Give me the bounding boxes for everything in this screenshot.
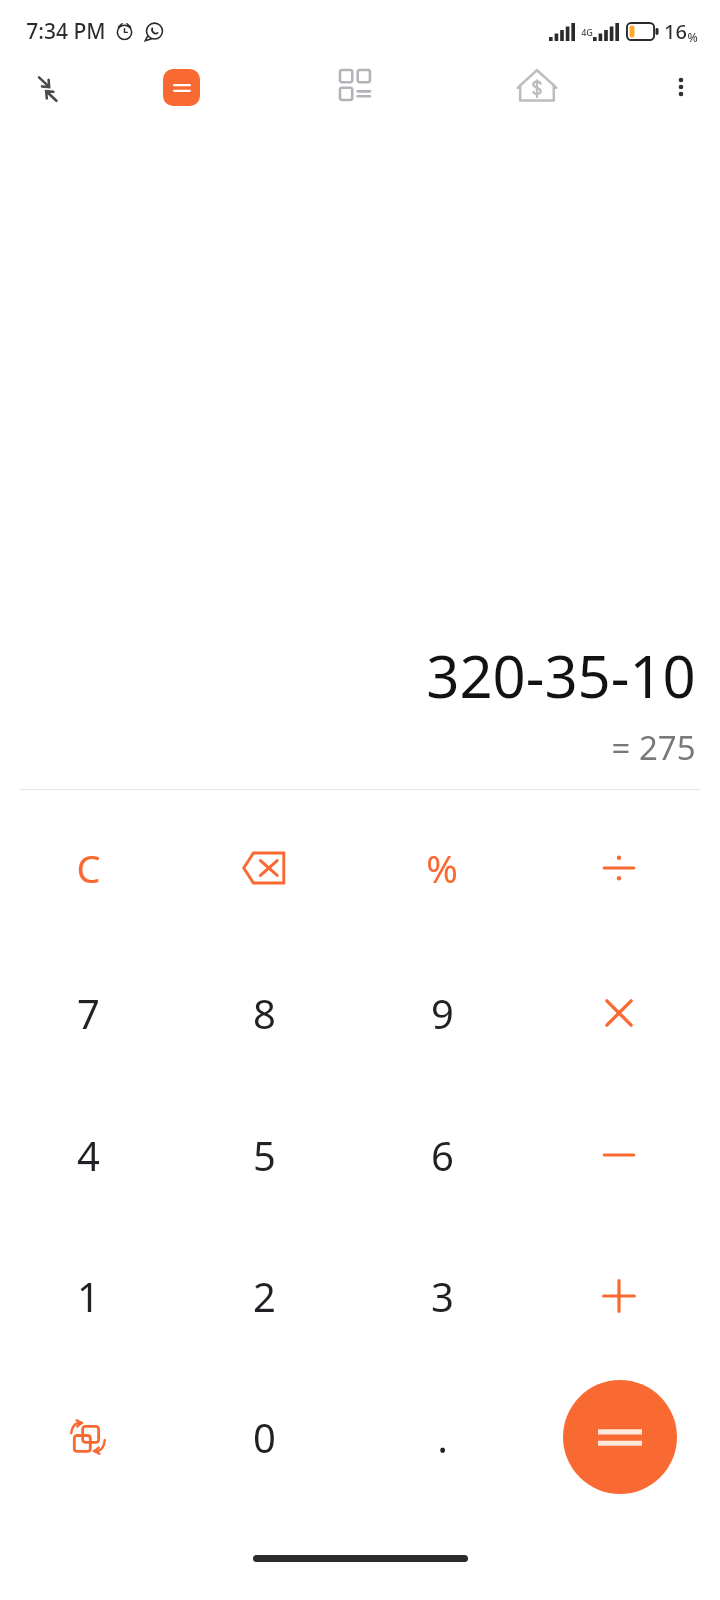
button[interactable]: Mortgage calculator <box>506 56 568 118</box>
button[interactable]: 7 <box>18 953 158 1073</box>
staticText: 9 <box>431 986 454 1040</box>
button[interactable]: 6 <box>372 1095 512 1215</box>
button[interactable]: Unit converter <box>326 56 388 118</box>
staticText: 7:34 PM <box>26 17 106 46</box>
button[interactable]: C <box>18 808 158 928</box>
staticText: 7 <box>77 986 100 1040</box>
button[interactable]: Equals <box>563 1380 677 1494</box>
staticText: . <box>437 1410 448 1464</box>
staticText: 2 <box>253 1269 276 1323</box>
staticText: 16 <box>664 18 687 45</box>
staticText: % <box>426 842 458 894</box>
staticText: 5 <box>253 1128 276 1182</box>
button[interactable] <box>18 1377 158 1497</box>
button[interactable]: 3 <box>372 1236 512 1356</box>
staticText: 0 <box>253 1410 276 1464</box>
button[interactable]: 8 <box>194 953 334 1073</box>
button[interactable] <box>549 1236 689 1356</box>
button[interactable]: More options <box>650 56 712 118</box>
staticText: % <box>687 29 698 45</box>
button[interactable]: 5 <box>194 1095 334 1215</box>
staticText: 4G <box>581 26 593 38</box>
staticText: 8 <box>253 986 276 1040</box>
button[interactable] <box>549 1095 689 1215</box>
button[interactable]: . <box>372 1377 512 1497</box>
button[interactable]: 0 <box>194 1377 334 1497</box>
button[interactable]: 2 <box>194 1236 334 1356</box>
button[interactable] <box>194 808 334 928</box>
staticText: 3 <box>431 1269 454 1323</box>
button[interactable]: 4 <box>18 1095 158 1215</box>
staticText: C <box>76 842 101 894</box>
button[interactable]: Collapse <box>14 56 76 118</box>
button[interactable]: Calculator mode <box>150 61 212 113</box>
staticText: = 275 <box>611 725 696 770</box>
button[interactable]: % <box>372 808 512 928</box>
staticText: 4 <box>77 1128 100 1182</box>
staticText: 1 <box>77 1269 100 1323</box>
staticText: 320-35-10 <box>426 636 696 715</box>
button[interactable] <box>549 808 689 928</box>
button[interactable]: 9 <box>372 953 512 1073</box>
staticText: 6 <box>431 1128 454 1182</box>
button[interactable] <box>549 953 689 1073</box>
button[interactable]: 1 <box>18 1236 158 1356</box>
